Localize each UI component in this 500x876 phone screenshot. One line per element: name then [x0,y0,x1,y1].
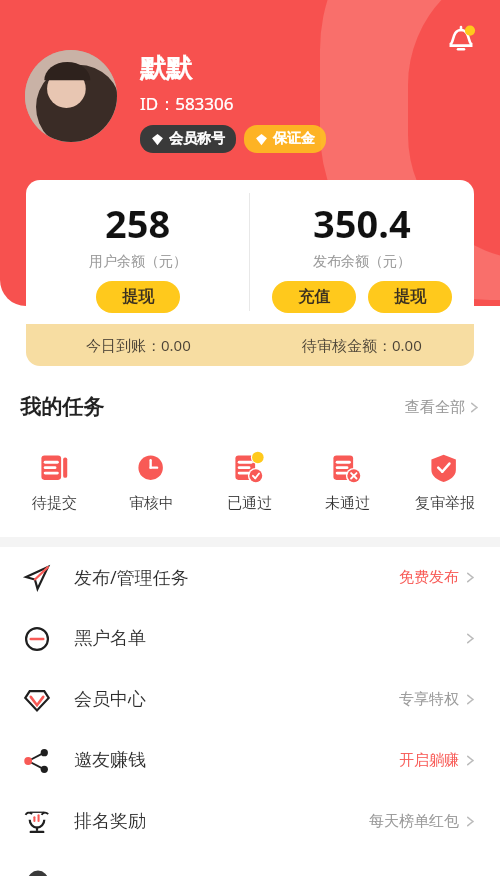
staticText: 查看全部 [405,398,465,417]
staticText: 专享特权 [399,690,459,709]
button[interactable]: 会员称号 [140,125,236,153]
staticText: 今日到账：0.00 [86,335,191,355]
button[interactable]: 查看全部 [405,398,480,417]
button[interactable]: 充值 [272,281,356,313]
staticText: 每天榜单红包 [369,812,459,831]
staticText: 保证金 [273,130,315,148]
staticText: 提现 [122,287,154,307]
button[interactable]: Avatar [25,50,117,142]
button[interactable]: 已通过 [200,448,298,517]
staticText: 发布/管理任务 [74,565,189,590]
button[interactable]: 排名奖励 [0,791,500,852]
staticText: 充值 [298,287,330,307]
staticText: 已通过 [227,494,272,513]
button[interactable]: 提现 [96,281,180,313]
button[interactable]: 黑户名单 [0,608,500,669]
staticText: 待审核金额：0.00 [302,335,422,355]
button[interactable]: 未通过 [298,448,396,517]
staticText: 258 [105,197,171,249]
staticText: 免费发布 [399,568,459,587]
button[interactable]: 会员中心 [0,669,500,730]
staticText: 我的任务 [20,394,104,420]
staticText: 未通过 [325,494,370,513]
staticText: ID：583306 [140,92,234,115]
staticText: 开启躺赚 [399,751,459,770]
staticText: 排名奖励 [74,810,146,833]
button[interactable]: 提现 [368,281,452,313]
staticText: 黑户名单 [74,627,146,650]
staticText: 用户余额（元） [89,253,187,271]
button[interactable]: 发布/管理任务 [0,547,500,608]
staticText: 会员中心 [74,688,146,711]
staticText: 默默 [140,52,192,85]
staticText: 审核中 [129,494,174,513]
button[interactable]: 审核中 [103,448,200,517]
button[interactable]: 复审举报 [396,448,494,517]
button[interactable]: 保证金 [244,125,326,153]
button[interactable]: 待提交 [6,448,103,517]
button[interactable]: 邀友赚钱 [0,730,500,791]
button[interactable]: Notifications [440,18,482,60]
staticText: 会员称号 [169,130,225,148]
staticText: 待提交 [32,494,77,513]
staticText: 复审举报 [415,494,475,513]
staticText: 350.4 [313,197,411,249]
staticText: 邀友赚钱 [74,749,146,772]
staticText: 发布余额（元） [313,253,411,271]
staticText: 提现 [394,287,426,307]
